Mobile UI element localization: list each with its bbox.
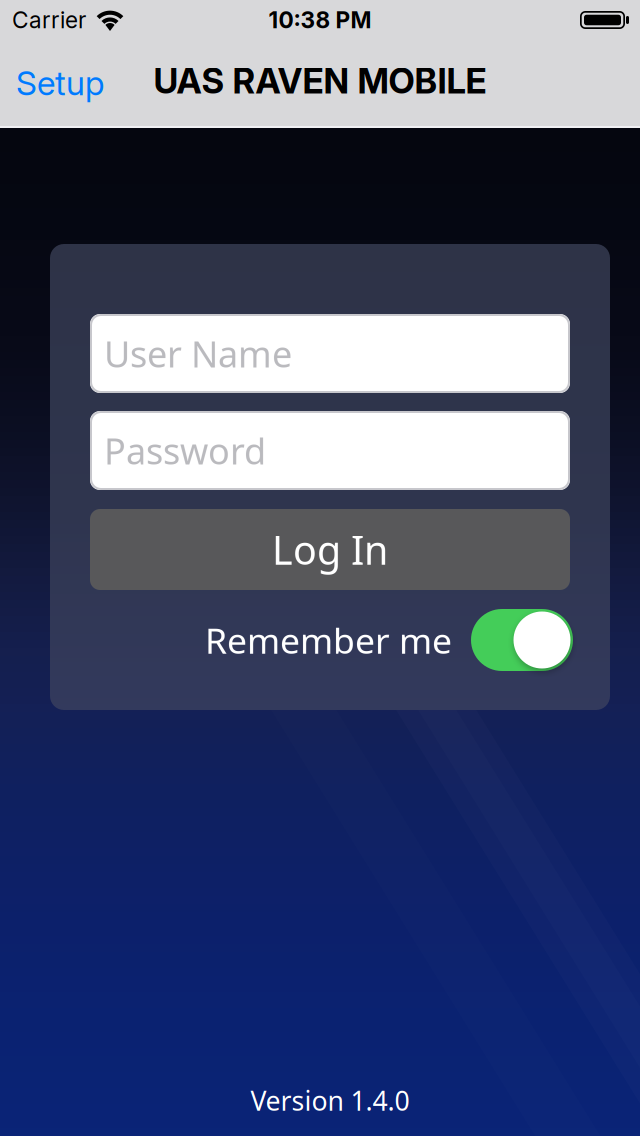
button[interactable]: User Name [90,314,570,393]
staticText: Remember me [205,616,452,664]
button[interactable]: Setup [16,63,104,103]
staticText: UAS RAVEN MOBILE [153,60,486,102]
staticText: Version 1.4.0 [250,1083,409,1118]
staticText: Log In [272,523,388,576]
button[interactable] [471,609,573,671]
staticText: 10:38 PM [268,6,371,34]
button[interactable]: Log In [90,509,570,590]
staticText: Carrier [12,6,86,34]
button[interactable]: Password [90,411,570,490]
staticText: User Name [104,330,292,377]
staticText: Setup [16,63,104,103]
staticText: Password [104,427,266,474]
